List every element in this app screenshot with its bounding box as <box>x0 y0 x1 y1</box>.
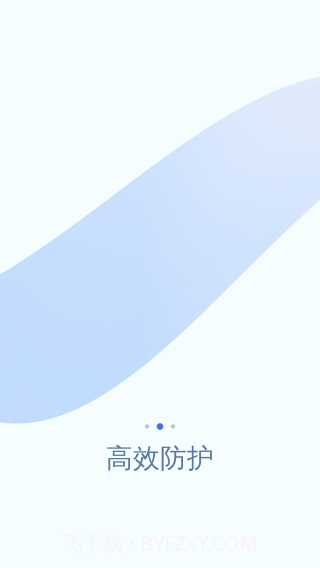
staticText: 高效防护 <box>106 442 214 475</box>
staticText: 飞下载 • BYFZXY.COM <box>62 529 257 556</box>
